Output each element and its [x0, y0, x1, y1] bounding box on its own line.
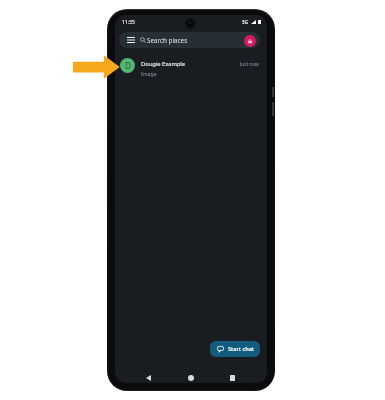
button[interactable]: Recent apps — [230, 375, 235, 381]
staticText: Dougie Example — [141, 60, 186, 68]
button[interactable]: Home — [188, 375, 194, 381]
button[interactable]: Open navigation menu — [119, 32, 260, 48]
staticText: Search places — [147, 36, 188, 45]
staticText: Image — [141, 70, 157, 77]
button[interactable]: Start chat — [210, 341, 260, 357]
button[interactable]: Account profile — [244, 35, 256, 47]
button[interactable]: Back — [146, 375, 151, 381]
staticText: 5G — [242, 19, 248, 25]
button[interactable]: D — [115, 55, 267, 79]
staticText: Start chat — [228, 345, 254, 353]
staticText: Just now — [240, 61, 259, 67]
staticText: D — [125, 60, 131, 71]
staticText: 11:35 — [122, 19, 135, 26]
other: Open navigation menu — [127, 37, 135, 43]
